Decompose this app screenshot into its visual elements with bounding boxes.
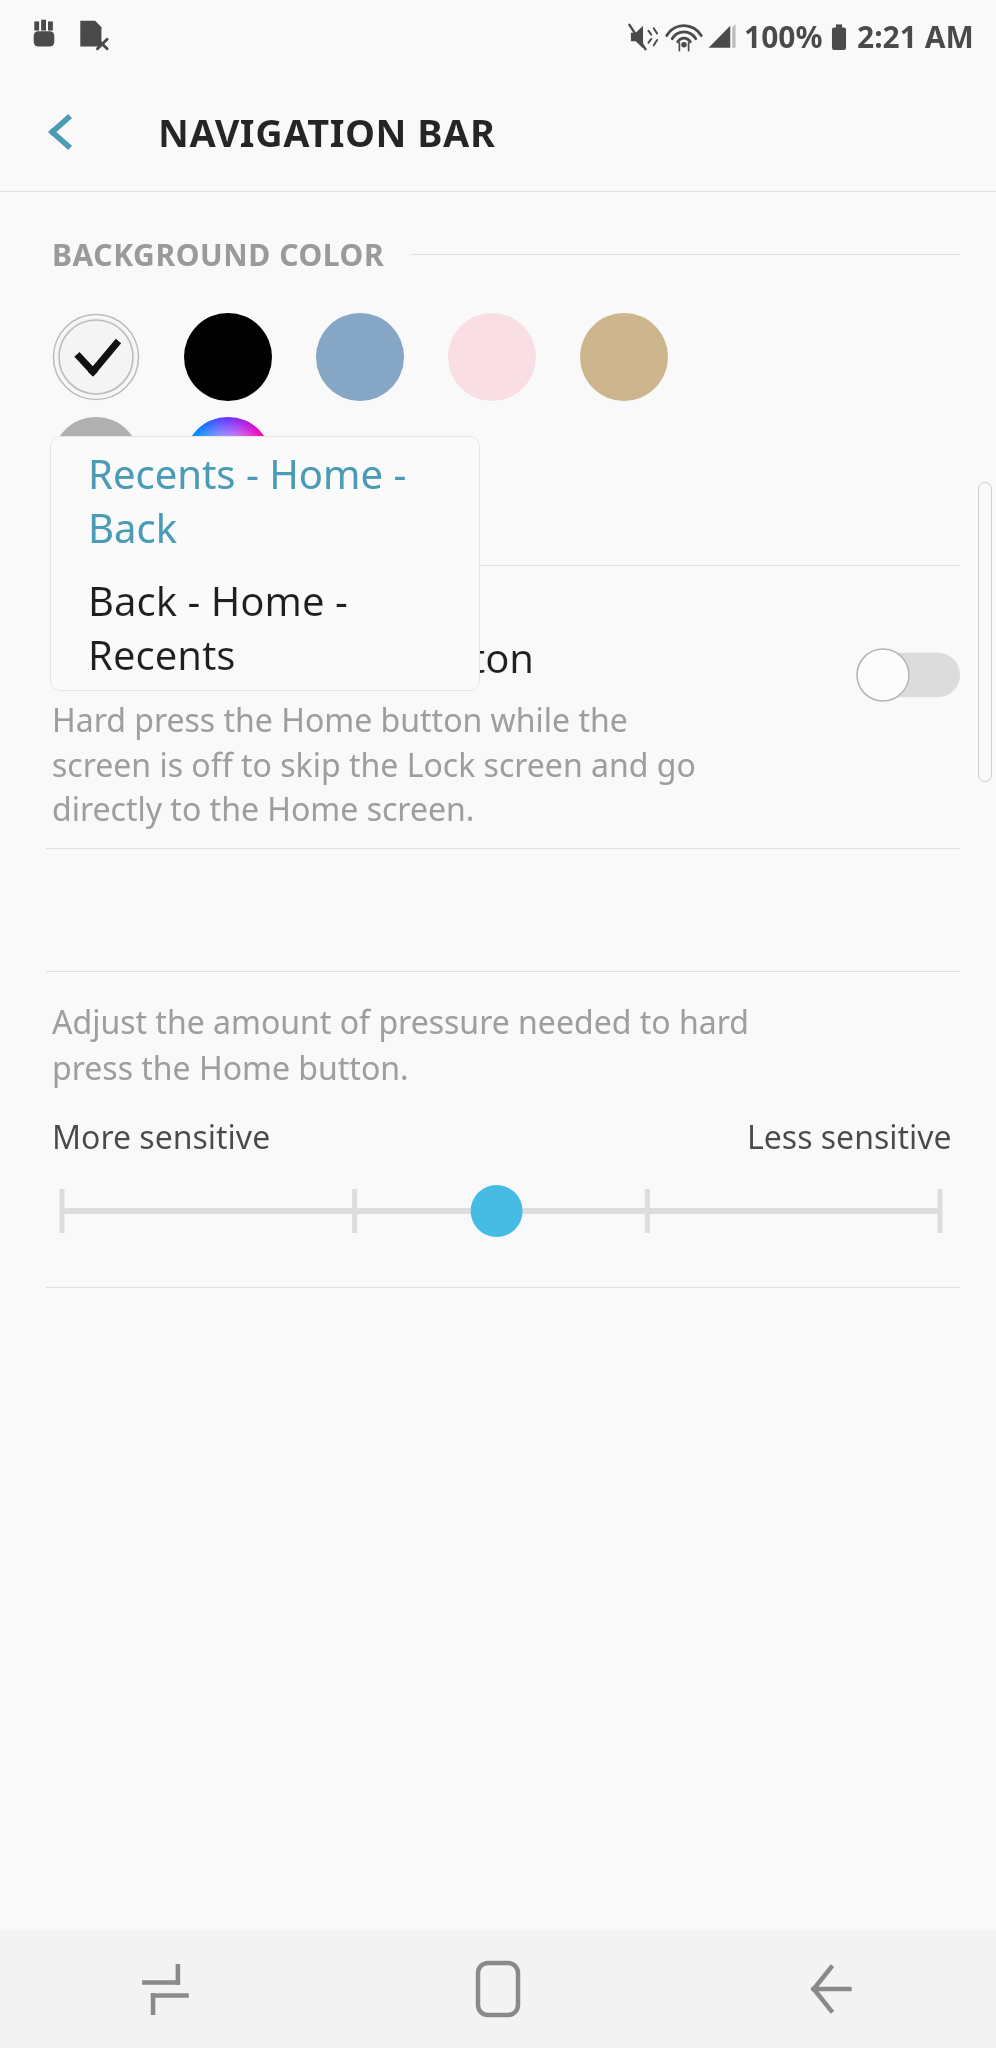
staticText: Adjust the amount of pressure needed to …: [52, 1000, 749, 1089]
staticText: Hard press the Home button while the scr…: [52, 698, 696, 830]
staticText: 2:21 AM: [857, 16, 974, 57]
button[interactable]: Back: [26, 97, 96, 167]
button[interactable]: Unlock with Home button toggle, off: [856, 648, 960, 702]
staticText: More sensitive: [52, 1115, 271, 1159]
staticText: Recents - Home - Back: [88, 446, 480, 554]
button[interactable]: Recents - Home - Back: [50, 436, 480, 563]
staticText: Less sensitive: [747, 1115, 952, 1159]
button[interactable]: Black: [184, 313, 272, 401]
button[interactable]: Recents: [0, 1930, 332, 2048]
button[interactable]: Back: [664, 1930, 996, 2048]
staticText: BACKGROUND COLOR: [52, 234, 385, 275]
button[interactable]: Custom color: [184, 417, 272, 505]
button[interactable]: White, selected: [52, 313, 140, 401]
button[interactable]: Gray: [52, 417, 140, 505]
button[interactable]: Home: [332, 1930, 664, 2048]
staticText: 100%: [744, 16, 823, 57]
button[interactable]: Pink: [448, 313, 536, 401]
staticText: Unlock with Home button: [52, 630, 535, 684]
staticText: NAVIGATION BAR: [158, 106, 496, 158]
staticText: Back - Home - Recents: [88, 573, 480, 681]
button[interactable]: Tan: [580, 313, 668, 401]
button[interactable]: [0, 1179, 996, 1243]
button[interactable]: Back - Home - Recents: [50, 563, 480, 691]
button[interactable]: Unlock with Home button: [0, 630, 996, 830]
button[interactable]: Blue: [316, 313, 404, 401]
